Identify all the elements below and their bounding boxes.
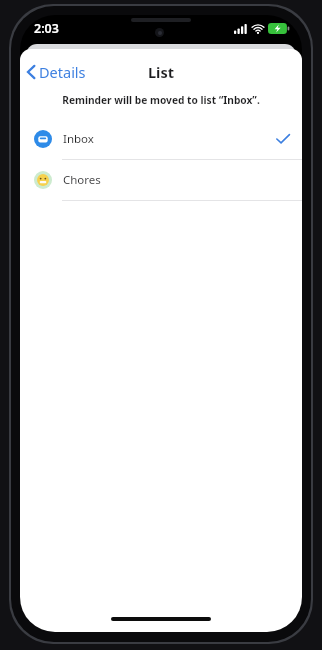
staticText: Reminder will be moved to list “Inbox”. (62, 93, 260, 107)
staticText: 2:03 (34, 20, 59, 37)
staticText: Details (39, 62, 86, 82)
staticText: List (148, 62, 175, 82)
other: Inbox list (34, 130, 52, 148)
other: Chores list (34, 171, 52, 189)
staticText: Inbox (63, 131, 94, 147)
staticText: Chores (63, 172, 101, 188)
button[interactable]: Details (20, 59, 94, 85)
button[interactable]: Chores list (20, 160, 302, 200)
button[interactable]: Inbox list (20, 119, 302, 159)
